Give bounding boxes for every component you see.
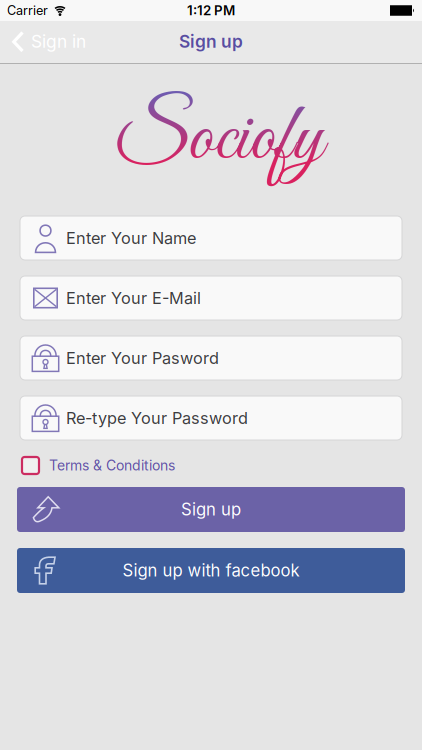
button[interactable]: Back to Sign in [12,31,86,52]
staticText: Sign up [181,499,241,520]
staticText: Sign up [179,31,243,52]
button[interactable]: Terms & Conditions [49,457,175,474]
button[interactable]: Sign up [17,487,405,532]
staticText: Enter Your Name [66,228,196,248]
button[interactable]: Re-type Your Password [20,396,402,440]
staticText: Sign up with facebook [122,560,299,581]
staticText: Terms & Conditions [49,457,175,474]
button[interactable]: Sign up with facebook [17,548,405,593]
button[interactable]: Enter Your Pasword [20,336,402,380]
staticText: Sign in [31,31,86,52]
staticText: Re-type Your Password [66,408,248,428]
staticText: Enter Your Pasword [66,348,219,368]
button[interactable]: Enter Your E-Mail [20,276,402,320]
staticText: 1:12 PM [187,2,235,18]
staticText: Enter Your E-Mail [66,288,201,308]
staticText: Carrier [7,3,48,18]
button[interactable]: Accept Terms & Conditions [22,457,39,474]
button[interactable]: Enter Your Name [20,216,402,260]
